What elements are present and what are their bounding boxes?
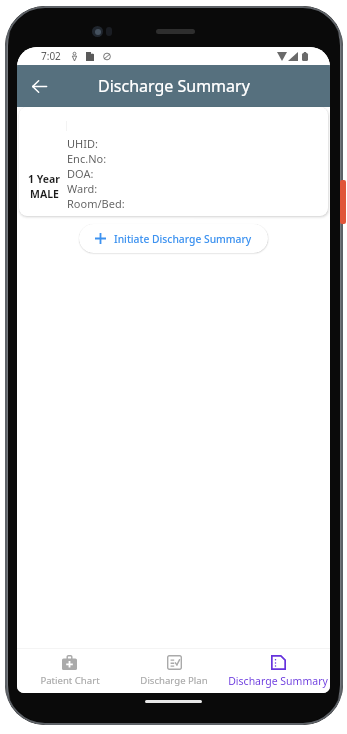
button[interactable]: Discharge Plan [122, 649, 226, 693]
staticText: 1 Year [28, 172, 61, 186]
staticText: Discharge Plan [140, 674, 208, 687]
staticText: Discharge Summary [98, 75, 250, 97]
button[interactable]: Patient Chart [17, 649, 122, 693]
staticText: MALE [30, 187, 59, 201]
staticText: UHID: [67, 136, 98, 151]
staticText: 7:02 [41, 49, 61, 63]
button[interactable]: Back [22, 69, 56, 103]
button[interactable]: Discharge Summary [226, 649, 330, 693]
staticText: DOA: [67, 166, 94, 181]
button[interactable]: Initiate Discharge Summary [79, 224, 268, 253]
staticText: Enc.No: [67, 151, 107, 166]
staticText: Ward: [67, 181, 98, 196]
staticText: Initiate Discharge Summary [114, 232, 252, 246]
staticText: Room/Bed: [67, 196, 125, 211]
staticText: Discharge Summary [228, 674, 328, 688]
staticText: Patient Chart [40, 674, 100, 687]
button[interactable]: 1 Year [19, 107, 328, 216]
